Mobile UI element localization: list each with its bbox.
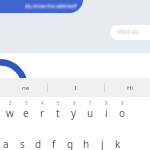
button[interactable]: f	[46, 125, 62, 150]
staticText: 7	[89, 100, 92, 106]
button[interactable]: 738 E. be	[110, 25, 150, 40]
button[interactable]: 2	[2, 97, 18, 123]
button[interactable]: d	[30, 125, 46, 150]
button[interactable]: 5	[50, 97, 66, 123]
button[interactable]: g	[62, 125, 78, 150]
staticText: a	[3, 137, 9, 150]
button[interactable]: Send	[0, 59, 28, 115]
staticText: h	[83, 137, 90, 150]
staticText: u	[87, 106, 94, 120]
staticText: o	[119, 106, 126, 120]
button[interactable]: I	[48, 78, 102, 97]
staticText: 8	[105, 100, 108, 106]
button[interactable]: k	[110, 125, 126, 150]
staticText: 4	[41, 100, 44, 106]
staticText: I	[74, 84, 77, 92]
staticText: f	[52, 137, 56, 150]
button[interactable]: 9	[114, 97, 130, 123]
staticText: r	[40, 106, 45, 120]
staticText: 6	[73, 100, 76, 106]
staticText: d	[35, 137, 42, 150]
button[interactable]: sh, know the address?	[0, 0, 83, 13]
staticText: e	[23, 106, 29, 120]
button[interactable]: j	[94, 125, 110, 150]
staticText: k	[115, 137, 121, 150]
staticText: y	[71, 106, 77, 120]
staticText: g	[67, 137, 74, 150]
button[interactable]: h	[78, 125, 94, 150]
staticText: w	[6, 106, 14, 120]
staticText: i	[105, 106, 108, 120]
button[interactable]: 3	[18, 97, 34, 123]
button[interactable]: ne	[0, 78, 45, 97]
button[interactable]: a	[0, 125, 14, 150]
staticText: 9	[121, 100, 124, 106]
button[interactable]: s	[14, 125, 30, 150]
button[interactable]: 4	[34, 97, 50, 123]
staticText: 3	[25, 100, 28, 106]
button[interactable]: 7	[82, 97, 98, 123]
staticText: j	[101, 137, 104, 150]
staticText: 738 E. be	[117, 29, 139, 36]
staticText: s	[20, 137, 25, 150]
staticText: ne	[22, 84, 30, 92]
staticText: sh, know the address?	[25, 3, 77, 10]
button[interactable]: Hi	[105, 78, 150, 97]
staticText: Hi	[127, 84, 133, 92]
button[interactable]: 8	[98, 97, 114, 123]
staticText: t	[56, 106, 60, 120]
staticText: 5	[57, 100, 60, 106]
button[interactable]: 6	[66, 97, 82, 123]
staticText: 2	[9, 100, 12, 106]
